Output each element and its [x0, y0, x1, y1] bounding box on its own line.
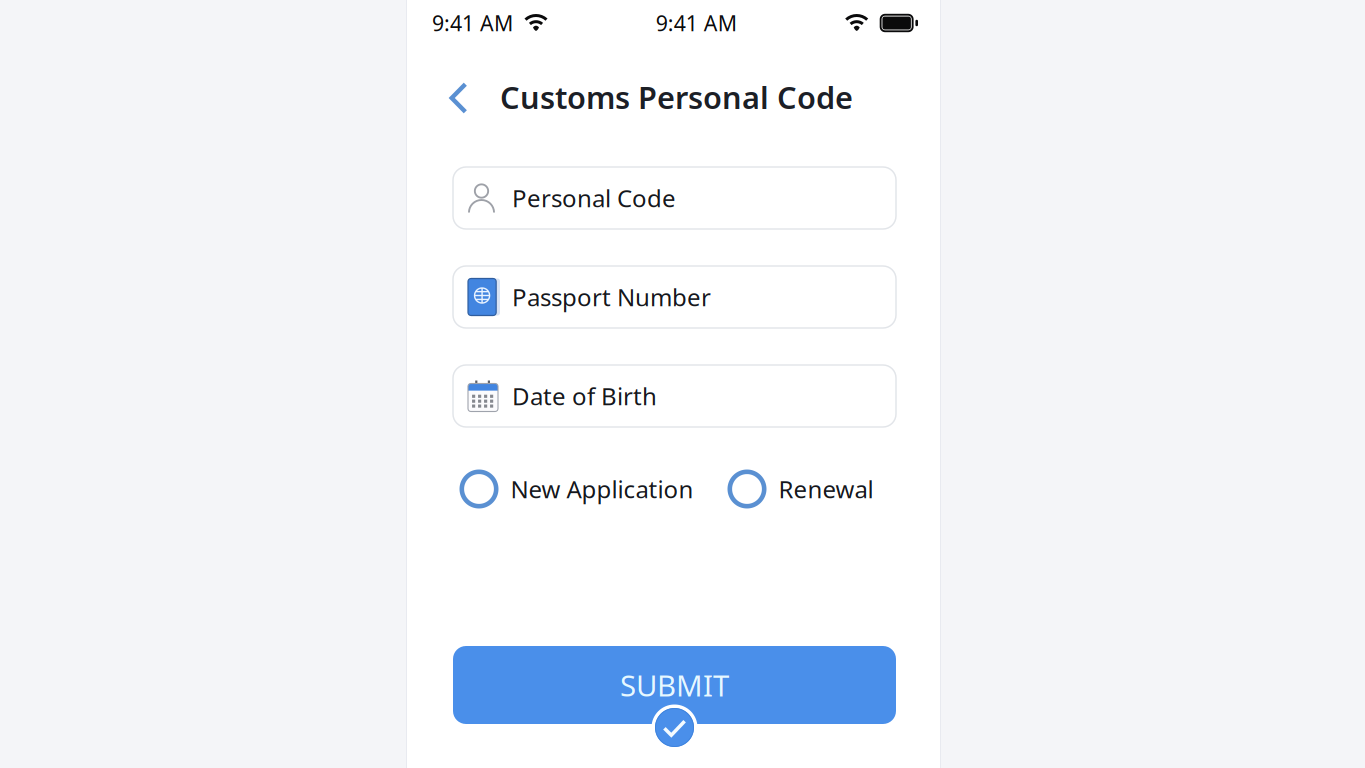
- staticText: Customs Personal Code: [500, 77, 853, 117]
- button[interactable]: Personal Code: [453, 167, 896, 229]
- button[interactable]: Renewal: [727, 469, 873, 508]
- button[interactable]: SUBMIT: [453, 646, 896, 724]
- button[interactable]: Date of Birth: [453, 365, 896, 427]
- staticText: Renewal: [778, 473, 873, 505]
- staticText: SUBMIT: [620, 665, 729, 704]
- button[interactable]: Passport Number: [453, 266, 896, 328]
- staticText: New Application: [510, 473, 693, 505]
- button[interactable]: SUBMIT: [453, 646, 896, 724]
- button[interactable]: Passport Number: [453, 266, 896, 328]
- staticText: Renewal: [778, 473, 873, 505]
- staticText: SUBMIT: [620, 665, 729, 704]
- button[interactable]: New Application: [459, 469, 693, 508]
- staticText: Passport Number: [512, 281, 711, 313]
- staticText: 9:41 AM: [656, 9, 737, 37]
- staticText: Date of Birth: [512, 380, 657, 412]
- staticText: New Application: [510, 473, 693, 505]
- button[interactable]: Back: [435, 75, 481, 121]
- staticText: 9:41 AM: [432, 9, 513, 37]
- button[interactable]: New Application: [459, 469, 693, 508]
- button[interactable]: Personal Code: [453, 167, 896, 229]
- button[interactable]: Back: [435, 75, 481, 121]
- staticText: Personal Code: [512, 182, 676, 214]
- button[interactable]: Renewal: [727, 469, 873, 508]
- staticText: 9:41 AM: [656, 9, 737, 37]
- staticText: Date of Birth: [512, 380, 657, 412]
- staticText: Passport Number: [512, 281, 711, 313]
- staticText: Customs Personal Code: [500, 77, 853, 117]
- button[interactable]: Date of Birth: [453, 365, 896, 427]
- staticText: Personal Code: [512, 182, 676, 214]
- staticText: 9:41 AM: [432, 9, 513, 37]
